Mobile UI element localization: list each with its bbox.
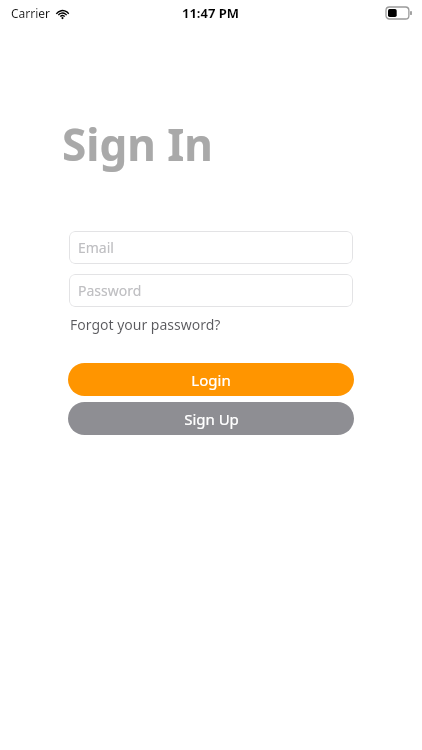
staticText: Sign In bbox=[62, 114, 213, 174]
staticText: Password bbox=[78, 281, 142, 300]
button[interactable]: Email bbox=[69, 231, 353, 264]
button[interactable]: Sign Up bbox=[68, 402, 354, 435]
staticText: Login bbox=[191, 370, 231, 390]
staticText: Carrier bbox=[11, 5, 51, 21]
staticText: Sign Up bbox=[184, 409, 239, 429]
staticText: 11:47 PM bbox=[182, 4, 240, 22]
button[interactable]: Forgot your password? bbox=[69, 313, 222, 336]
staticText: Forgot your password? bbox=[70, 315, 221, 334]
staticText: Email bbox=[78, 238, 114, 257]
button[interactable]: Password bbox=[69, 274, 353, 307]
button[interactable]: Login bbox=[68, 363, 354, 396]
